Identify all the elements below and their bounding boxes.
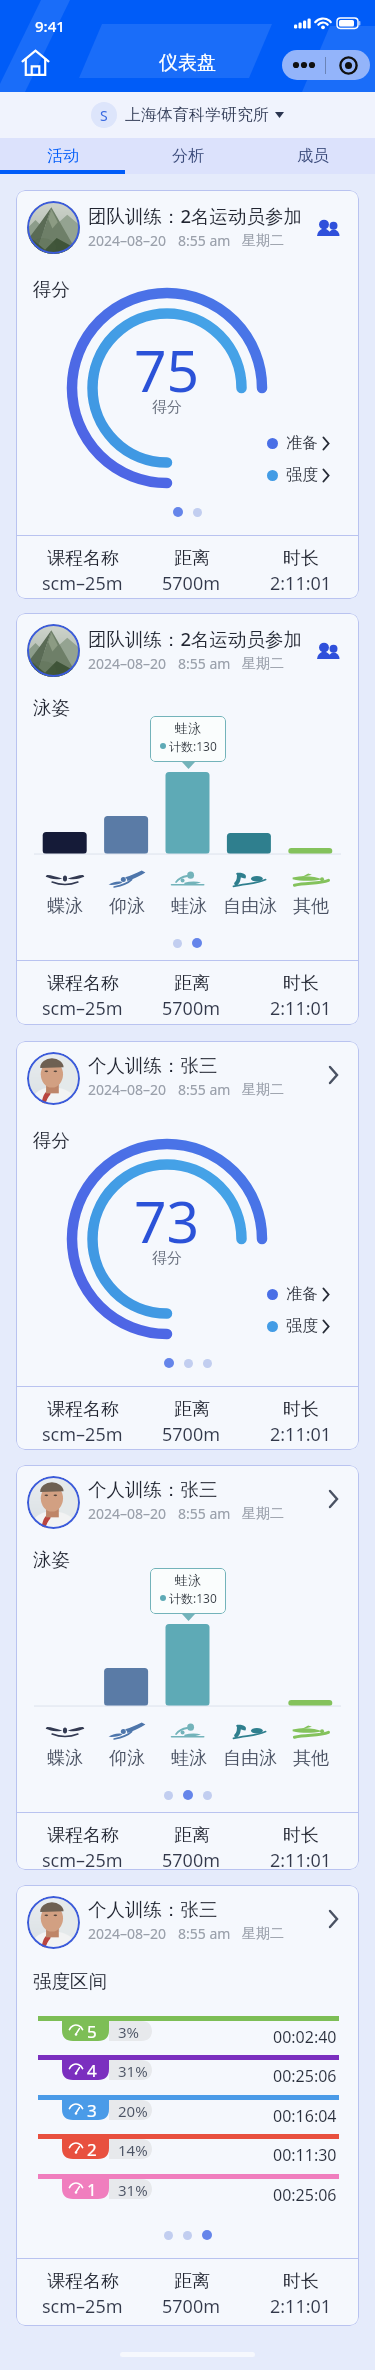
staticText: 得分	[33, 278, 70, 301]
button[interactable]: 成员	[250, 138, 375, 174]
staticText: 时长	[283, 1398, 319, 1421]
button[interactable]: 1	[16, 2174, 359, 2204]
staticText: 蛙泳	[175, 1572, 201, 1588]
staticText: 时长	[283, 1824, 319, 1847]
staticText: 蝶泳	[47, 895, 83, 918]
staticText: 强度区间	[33, 1970, 107, 1993]
staticText: 73	[134, 1182, 200, 1260]
button[interactable]: 2	[16, 2134, 359, 2164]
staticText: 蛙泳	[171, 895, 207, 918]
staticText: 距离	[174, 1824, 210, 1847]
button[interactable]: 强度	[265, 1314, 332, 1338]
staticText: 5700m	[162, 996, 221, 1021]
button[interactable]: 准备	[265, 1282, 332, 1306]
staticText: 时长	[283, 972, 319, 995]
staticText: 其他	[293, 1747, 329, 1770]
staticText: 3%	[118, 2022, 140, 2042]
other: Details	[328, 1909, 339, 1929]
staticText: 5700m	[162, 1848, 221, 1870]
staticText: 14%	[118, 2140, 148, 2160]
button[interactable]: 个人训练：张三	[16, 1041, 359, 1111]
button[interactable]: 3	[16, 2095, 359, 2125]
button[interactable]: 活动	[0, 138, 125, 174]
staticText: 1	[87, 2178, 97, 2201]
staticText: 星期二	[242, 1925, 284, 1943]
button[interactable]: S	[0, 92, 375, 138]
staticText: 2:11:01	[270, 571, 332, 596]
staticText: 蛙泳	[175, 720, 201, 736]
staticText: 蝶泳	[47, 1747, 83, 1770]
other: Team members	[315, 217, 340, 238]
staticText: 00:11:30	[273, 2144, 337, 2166]
button[interactable]: More options	[282, 50, 370, 80]
button[interactable]: 5	[16, 2016, 359, 2046]
staticText: scm–25m	[42, 571, 123, 596]
staticText: 8:55 am	[178, 231, 231, 250]
staticText: 5700m	[162, 2294, 221, 2319]
button[interactable]: 个人训练：张三	[16, 1885, 359, 1955]
staticText: 星期二	[242, 655, 284, 673]
staticText: 团队训练：2名运动员参加	[88, 626, 303, 651]
staticText: 课程名称	[47, 972, 119, 995]
staticText: 星期二	[242, 232, 284, 250]
button[interactable]: 准备	[265, 431, 332, 455]
staticText: 时长	[283, 2270, 319, 2293]
button[interactable]: 4	[16, 2055, 359, 2085]
button[interactable]: 个人训练：张三	[16, 1465, 359, 1535]
staticText: 课程名称	[47, 547, 119, 570]
staticText: 时长	[283, 547, 319, 570]
staticText: 2024–08–20	[88, 231, 167, 250]
button[interactable]: 团队训练：2名运动员参加	[16, 613, 359, 683]
staticText: 准备	[286, 433, 318, 453]
button[interactable]: Home	[22, 49, 49, 76]
staticText: 得分	[33, 1129, 70, 1152]
staticText: 活动	[47, 146, 79, 166]
staticText: scm–25m	[42, 2294, 123, 2319]
staticText: 5700m	[162, 571, 221, 596]
staticText: 5700m	[162, 1422, 221, 1447]
staticText: 蛙泳	[171, 1747, 207, 1770]
staticText: 泳姿	[33, 696, 70, 719]
staticText: 31%	[118, 2180, 148, 2200]
staticText: 2:11:01	[270, 1848, 332, 1870]
staticText: 2024–08–20	[88, 654, 167, 673]
staticText: 00:02:40	[273, 2026, 337, 2048]
other: Details	[328, 1065, 339, 1085]
staticText: 计数:130	[169, 1590, 217, 1606]
staticText: 2024–08–20	[88, 1080, 167, 1099]
staticText: 成员	[297, 146, 329, 166]
staticText: 泳姿	[33, 1548, 70, 1571]
staticText: 分析	[172, 146, 204, 166]
staticText: 距离	[174, 2270, 210, 2293]
staticText: 2024–08–20	[88, 1924, 167, 1943]
staticText: 2	[87, 2138, 97, 2161]
button[interactable]: 分析	[125, 138, 250, 174]
staticText: 3	[87, 2099, 97, 2122]
other: Details	[328, 1489, 339, 1509]
staticText: 20%	[118, 2101, 148, 2121]
staticText: 上海体育科学研究所	[125, 105, 269, 125]
staticText: 距离	[174, 547, 210, 570]
button[interactable]: 团队训练：2名运动员参加	[16, 190, 359, 260]
staticText: 强度	[286, 465, 318, 485]
staticText: 强度	[286, 1316, 318, 1336]
staticText: 4	[87, 2059, 97, 2082]
staticText: 2024–08–20	[88, 1504, 167, 1523]
staticText: 其他	[293, 895, 329, 918]
staticText: 距离	[174, 1398, 210, 1421]
staticText: scm–25m	[42, 1422, 123, 1447]
staticText: scm–25m	[42, 996, 123, 1021]
staticText: 团队训练：2名运动员参加	[88, 203, 303, 228]
staticText: 2:11:01	[270, 996, 332, 1021]
staticText: 75	[134, 331, 200, 409]
staticText: 自由泳	[223, 895, 277, 918]
staticText: 个人训练：张三	[88, 1898, 218, 1921]
staticText: 31%	[118, 2061, 148, 2081]
staticText: 课程名称	[47, 2270, 119, 2293]
staticText: 自由泳	[223, 1747, 277, 1770]
staticText: 个人训练：张三	[88, 1478, 218, 1501]
staticText: 2:11:01	[270, 1422, 332, 1447]
staticText: 8:55 am	[178, 1924, 231, 1943]
button[interactable]: 强度	[265, 463, 332, 487]
staticText: 个人训练：张三	[88, 1054, 218, 1077]
